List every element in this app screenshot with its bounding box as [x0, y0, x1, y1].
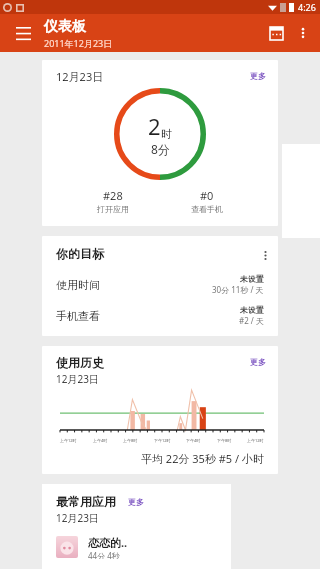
staticText: 手机查看 [56, 309, 100, 323]
staticText: 下午12时 [154, 438, 171, 443]
staticText: 恋恋的.. [88, 535, 128, 550]
staticText: 查看手机 [191, 204, 223, 214]
staticText: 最常用应用 [56, 494, 116, 509]
button[interactable]: 更多 [248, 355, 268, 369]
staticText: 未设置 [240, 305, 264, 315]
button[interactable]: Goals options [256, 246, 274, 264]
staticText: 12月23日 [56, 372, 99, 386]
button[interactable]: 更多 [126, 495, 146, 509]
button[interactable]: #28 [91, 186, 135, 216]
staticText: 上午4时 [93, 438, 108, 443]
staticText: 更多 [128, 497, 144, 507]
staticText: 上午12时 [247, 438, 264, 443]
staticText: 下午8时 [217, 438, 232, 443]
staticText: 30分 11秒 / 天 [212, 284, 264, 295]
staticText: 更多 [250, 357, 266, 367]
button[interactable]: 手机查看 [42, 295, 278, 326]
button[interactable]: 最常用应用 [42, 484, 231, 569]
button[interactable]: More options [290, 20, 316, 46]
staticText: #2 / 天 [239, 315, 264, 326]
staticText: #28 [103, 188, 123, 203]
button[interactable]: 你的目标 [42, 236, 278, 336]
staticText: 12月23日 [56, 69, 104, 84]
button[interactable]: Open navigation menu [8, 18, 38, 48]
button[interactable]: Calendar [262, 19, 290, 47]
staticText: 2011年12月23日 [44, 37, 113, 49]
button[interactable]: 恋恋的.. [42, 525, 231, 569]
staticText: 8分 [151, 141, 170, 157]
staticText: 平均 22分 35秒 #5 / 小时 [141, 451, 264, 466]
staticText: 下午4时 [186, 438, 201, 443]
staticText: #0 [200, 188, 214, 203]
staticText: 仪表板 [44, 18, 86, 36]
staticText: 使用时间 [56, 278, 100, 292]
staticText: 更多 [250, 71, 266, 81]
button[interactable]: 12月23日 [42, 60, 278, 226]
staticText: 2 [148, 111, 161, 141]
button[interactable]: 使用时间 [42, 264, 278, 295]
staticText: 上午12时 [60, 438, 77, 443]
staticText: 时 [161, 127, 172, 141]
staticText: 上午8时 [123, 438, 138, 443]
staticText: 打开应用 [97, 204, 129, 214]
button[interactable]: #0 [185, 186, 229, 216]
button[interactable]: 更多 [248, 69, 268, 83]
button[interactable]: 使用历史 [42, 346, 278, 474]
staticText: 使用历史 [56, 355, 104, 370]
staticText: 12月23日 [56, 511, 99, 525]
staticText: 44分 4秒 [88, 550, 120, 559]
staticText: 你的目标 [56, 246, 104, 261]
staticText: 4:26 [298, 1, 316, 13]
staticText: 未设置 [240, 274, 264, 284]
